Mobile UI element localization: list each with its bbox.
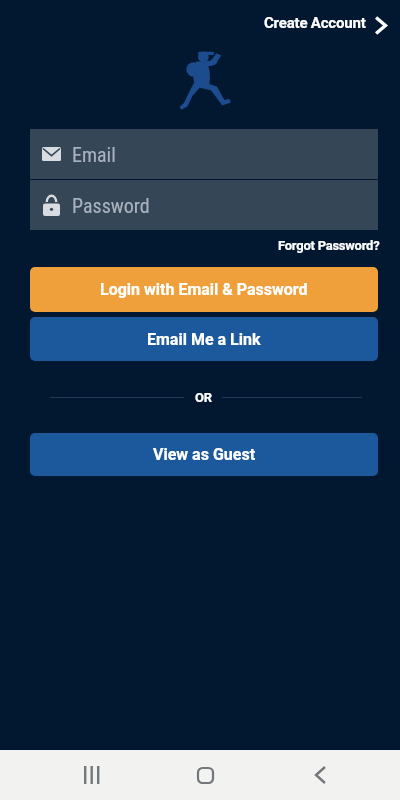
button[interactable]: Login with Email & Password — [30, 267, 378, 312]
staticText: Email — [72, 143, 116, 166]
button[interactable]: Forgot Password? — [278, 238, 380, 253]
staticText: Login with Email & Password — [100, 280, 308, 299]
button[interactable]: Create Account — [260, 10, 390, 36]
staticText: Password — [72, 194, 150, 217]
staticText: OR — [195, 390, 212, 405]
staticText: Create Account — [264, 14, 366, 32]
button[interactable] — [189, 759, 221, 791]
button[interactable]: Email Me a Link — [30, 317, 378, 361]
staticText: View as Guest — [153, 445, 256, 464]
button[interactable]: View as Guest — [30, 433, 378, 476]
staticText: Email Me a Link — [147, 330, 261, 349]
button[interactable]: Email — [30, 129, 378, 179]
button[interactable]: Password — [30, 180, 378, 230]
button[interactable] — [304, 759, 336, 791]
button[interactable] — [76, 759, 108, 791]
